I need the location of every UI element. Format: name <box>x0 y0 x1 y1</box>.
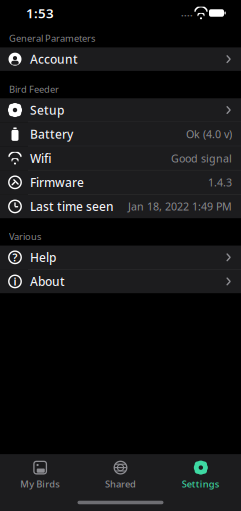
staticText: Good signal <box>171 151 232 165</box>
staticText: Shared <box>105 478 136 490</box>
staticText: 1:53 <box>26 4 54 22</box>
button[interactable]: ? <box>0 246 241 270</box>
staticText: Ok (4.0 v) <box>186 127 232 141</box>
staticText: My Birds <box>20 478 60 490</box>
button[interactable]: Shared <box>80 455 161 494</box>
staticText: Jan 18, 2022 1:49 PM <box>128 199 232 214</box>
button[interactable]: Settings <box>161 455 241 494</box>
staticText: .... <box>181 7 193 19</box>
button[interactable]: i <box>0 270 241 293</box>
button[interactable]: Last time seen <box>0 195 241 218</box>
staticText: Firmware <box>30 174 84 190</box>
button[interactable]: Wifi <box>0 146 241 171</box>
staticText: Help <box>30 249 56 265</box>
staticText: Account <box>30 51 78 67</box>
staticText: Battery <box>30 126 73 142</box>
button[interactable]: Account <box>0 47 241 71</box>
staticText: Various <box>9 230 41 243</box>
staticText: Setup <box>30 102 64 118</box>
staticText: About <box>30 273 65 289</box>
staticText: Wifi <box>30 150 52 166</box>
button[interactable]: Firmware <box>0 171 241 195</box>
button[interactable]: Battery <box>0 122 241 146</box>
staticText: Bird Feeder <box>9 83 59 95</box>
staticText: ? <box>12 250 17 264</box>
staticText: Settings <box>182 478 220 490</box>
staticText: Last time seen <box>30 198 114 214</box>
staticText: i <box>13 274 16 288</box>
staticText: 1.4.3 <box>208 175 232 189</box>
staticText: General Parameters <box>9 32 95 44</box>
button[interactable]: My Birds <box>0 455 80 494</box>
button[interactable]: Setup <box>0 98 241 122</box>
